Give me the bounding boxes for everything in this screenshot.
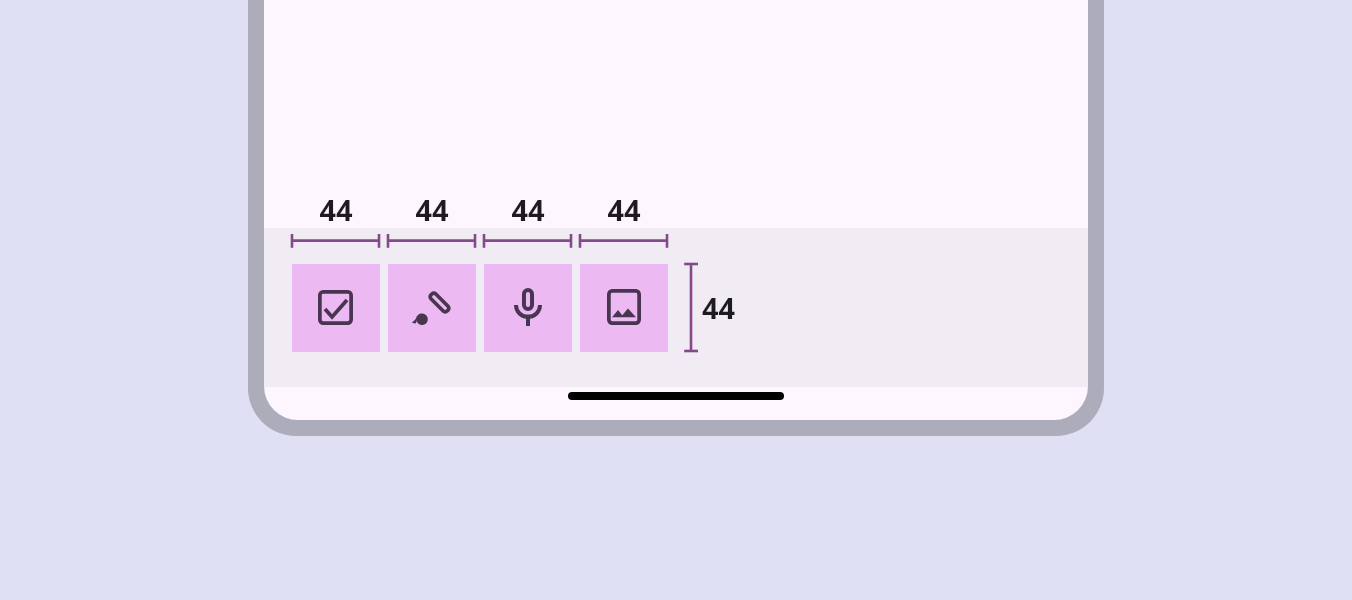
button[interactable]: Image bbox=[580, 264, 668, 352]
staticText: 44 bbox=[319, 190, 353, 222]
button[interactable]: Checkbox bbox=[292, 264, 380, 352]
staticText: 44 bbox=[607, 190, 641, 222]
button[interactable]: Mic bbox=[484, 264, 572, 352]
button[interactable]: Brush bbox=[388, 264, 476, 352]
staticText: 44 bbox=[511, 190, 545, 222]
staticText: 44 bbox=[702, 288, 736, 320]
staticText: 44 bbox=[415, 190, 449, 222]
